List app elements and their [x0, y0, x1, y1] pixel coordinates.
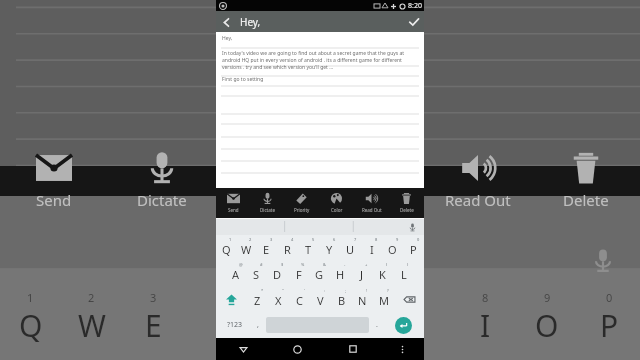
staticText: V	[317, 293, 324, 308]
button[interactable]: 9	[382, 235, 403, 260]
button[interactable]: $	[267, 260, 288, 286]
button[interactable]: +	[351, 260, 372, 286]
staticText: Send	[228, 207, 239, 213]
staticText: X	[275, 293, 282, 308]
button[interactable]: %	[288, 260, 309, 286]
button[interactable]: 7	[340, 235, 361, 260]
button[interactable]: Enter	[395, 317, 412, 334]
button[interactable]: Back	[216, 12, 236, 32]
button[interactable]: 2	[236, 235, 256, 260]
staticText: 7	[354, 237, 357, 242]
button[interactable]: -	[330, 260, 351, 286]
staticText: O	[535, 305, 559, 346]
staticText: Q	[19, 305, 43, 346]
staticText: First go to setting	[222, 76, 264, 83]
button[interactable]: 3	[256, 235, 277, 260]
staticText: G	[315, 267, 324, 282]
staticText: :	[324, 288, 326, 293]
staticText: Dictate	[137, 190, 187, 210]
staticText: I	[480, 305, 491, 346]
staticText: W	[241, 242, 252, 257]
staticText: T	[305, 242, 312, 257]
staticText: E	[263, 242, 270, 257]
button[interactable]: Color	[319, 188, 354, 218]
staticText: C	[296, 293, 303, 308]
button[interactable]: 0	[403, 235, 424, 260]
button[interactable]: &	[309, 260, 330, 286]
button[interactable]: )	[393, 260, 414, 286]
button[interactable]: 4	[277, 235, 298, 260]
button[interactable]: Delete	[389, 188, 424, 218]
button[interactable]: Shift	[216, 286, 247, 312]
staticText: 0	[417, 237, 420, 242]
button[interactable]: Voice input	[405, 220, 419, 234]
staticText: +	[365, 262, 368, 267]
staticText: Send	[36, 190, 72, 210]
staticText: 4	[291, 237, 294, 242]
staticText: ,	[257, 320, 259, 330]
button[interactable]: Read Out	[354, 188, 389, 218]
staticText: O	[388, 242, 397, 257]
staticText: @	[239, 262, 243, 267]
button[interactable]: Dictate	[250, 188, 284, 218]
staticText: Z	[254, 293, 261, 308]
button[interactable]: ;	[331, 286, 352, 312]
button[interactable]: ,	[250, 314, 266, 336]
staticText: .	[376, 320, 378, 330]
staticText: 9	[544, 290, 551, 305]
staticText: B	[338, 293, 346, 308]
staticText: 1	[27, 290, 34, 305]
staticText: Dictate	[260, 207, 275, 213]
staticText: D	[273, 267, 282, 282]
staticText: 8	[375, 237, 378, 242]
staticText: F	[296, 267, 302, 282]
button[interactable]: 8	[361, 235, 382, 260]
staticText: J	[360, 267, 364, 282]
staticText: !	[366, 288, 368, 293]
button[interactable]: 6	[319, 235, 340, 260]
button[interactable]: ?123	[219, 314, 250, 336]
staticText: E	[145, 305, 162, 346]
staticText: ;	[345, 288, 347, 293]
button[interactable]: #	[246, 260, 267, 286]
button[interactable]: Priority	[284, 188, 319, 218]
staticText: N	[358, 293, 367, 308]
staticText: S	[253, 267, 260, 282]
button[interactable]: .	[369, 314, 385, 336]
button[interactable]: Home	[270, 338, 325, 360]
button[interactable]: '	[289, 286, 310, 312]
button[interactable]: *	[247, 286, 268, 312]
button[interactable]: ?	[373, 286, 394, 312]
button[interactable]: Recent apps	[325, 338, 380, 360]
button[interactable]: :	[310, 286, 331, 312]
button[interactable]: (	[372, 260, 393, 286]
button[interactable]: Hide keyboard	[216, 338, 270, 360]
staticText: Delete	[563, 190, 609, 210]
button[interactable]: 5	[298, 235, 319, 260]
button[interactable]: Send	[216, 188, 250, 218]
button[interactable]: 1	[216, 235, 236, 260]
staticText: -	[344, 262, 346, 267]
button[interactable]: Done	[404, 12, 424, 32]
button[interactable]: "	[268, 286, 289, 312]
staticText: 8	[482, 290, 489, 305]
staticText: R	[284, 242, 291, 257]
staticText: Read Out	[362, 207, 382, 213]
staticText: Q	[222, 242, 231, 257]
staticText: 0	[606, 290, 613, 305]
staticText: 3	[150, 290, 157, 305]
staticText: L	[401, 267, 407, 282]
staticText: 5	[312, 237, 315, 242]
staticText: W	[78, 305, 106, 346]
staticText: 9	[396, 237, 399, 242]
button[interactable]: Backspace	[394, 286, 424, 312]
staticText: "	[282, 288, 284, 293]
button[interactable]: More options	[380, 338, 424, 360]
button[interactable]: @	[226, 260, 246, 286]
staticText: Color	[331, 207, 343, 213]
button[interactable]: !	[352, 286, 373, 312]
staticText: Hey,	[222, 35, 233, 42]
staticText: 6	[333, 237, 336, 242]
staticText: Delete	[400, 207, 414, 213]
